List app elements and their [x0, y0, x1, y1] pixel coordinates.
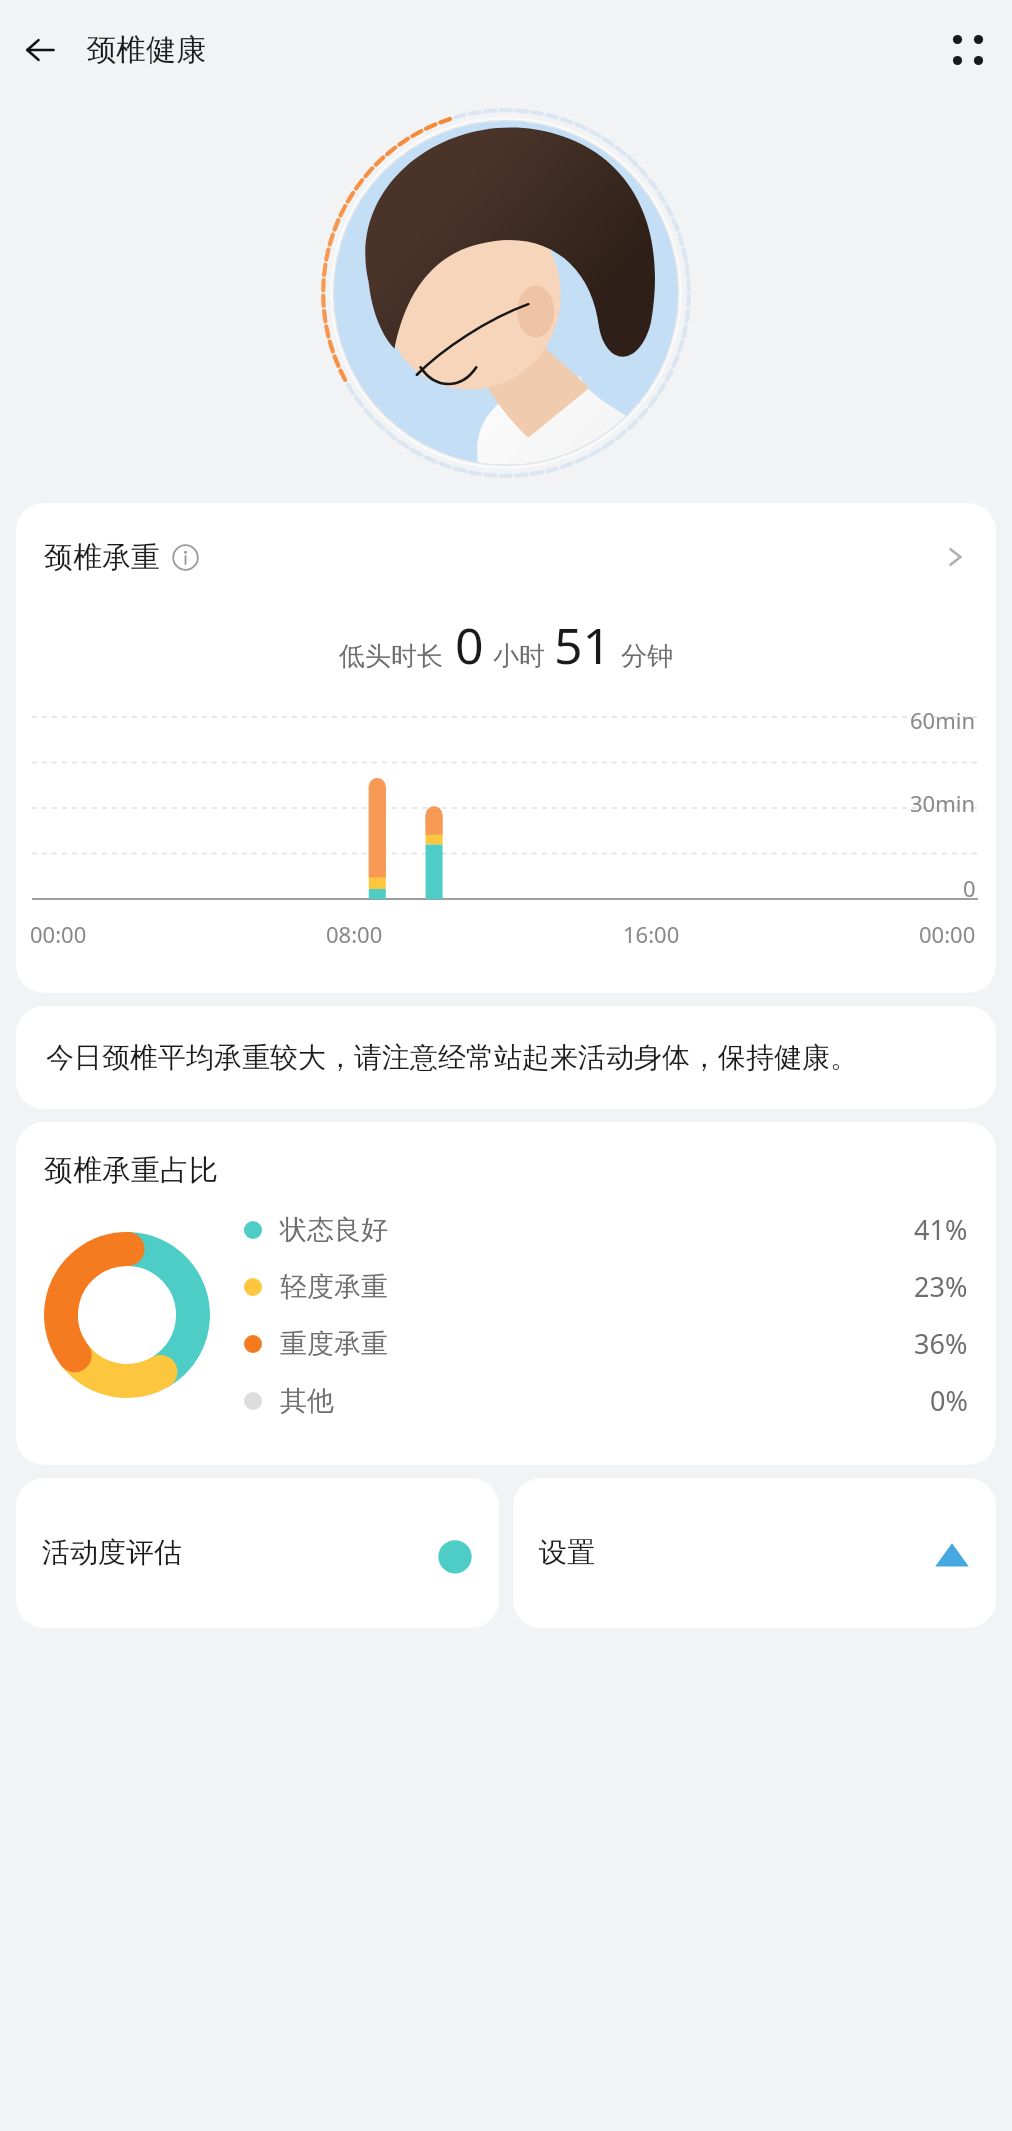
button[interactable]: 活动度评估 [16, 1478, 499, 1628]
staticText: 颈椎承重占比 [44, 1152, 218, 1189]
staticText: 分钟 [621, 640, 673, 673]
staticText: 60min [910, 705, 976, 735]
button[interactable]: 颈椎承重占比 [16, 1122, 996, 1465]
button[interactable]: 状态良好 [244, 1211, 968, 1248]
button[interactable]: 轻度承重 [244, 1268, 968, 1305]
button[interactable]: 重度承重 [244, 1325, 968, 1362]
staticText: 0% [930, 1382, 968, 1419]
staticText: 41% [914, 1211, 968, 1248]
staticText: 活动度评估 [42, 1535, 182, 1570]
staticText: 08:00 [326, 919, 383, 949]
staticText: 51 [554, 611, 612, 679]
staticText: 00:00 [30, 919, 87, 949]
staticText: 轻度承重 [280, 1270, 388, 1304]
staticText: 颈椎承重 [44, 539, 160, 576]
staticText: 00:00 [919, 919, 976, 949]
button[interactable]: 设置 [513, 1478, 996, 1628]
staticText: 状态良好 [280, 1213, 388, 1247]
staticText: 重度承重 [280, 1327, 388, 1361]
staticText: 今日颈椎平均承重较大，请注意经常站起来活动身体，保持健康。 [46, 1040, 858, 1075]
staticText: 小时 [493, 640, 545, 673]
staticText: 0 [963, 873, 976, 903]
staticText: 颈椎健康 [86, 31, 206, 69]
staticText: 低头时长 [339, 640, 443, 673]
staticText: 0 [455, 611, 484, 679]
staticText: 30min [910, 788, 976, 818]
staticText: 设置 [539, 1535, 595, 1570]
button[interactable]: Back [12, 22, 68, 78]
staticText: 23% [914, 1268, 968, 1305]
button[interactable]: 颈椎承重 [16, 503, 996, 993]
button[interactable]: More options [940, 22, 996, 78]
staticText: 36% [914, 1325, 968, 1362]
staticText: 其他 [280, 1384, 334, 1418]
button[interactable]: 其他 [244, 1382, 968, 1419]
staticText: 16:00 [623, 919, 680, 949]
button[interactable]: 今日颈椎平均承重较大，请注意经常站起来活动身体，保持健康。 [16, 1006, 996, 1109]
